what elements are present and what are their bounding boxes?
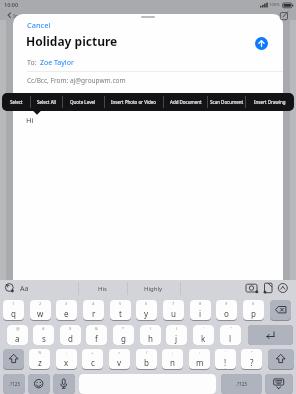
- button[interactable]: [53, 374, 75, 394]
- button[interactable]: 1: [3, 300, 24, 320]
- button[interactable]: [270, 300, 291, 320]
- button[interactable]: ": [241, 349, 262, 369]
- staticText: :: [199, 350, 201, 355]
- button[interactable]: *: [113, 325, 134, 345]
- button[interactable]: Select All: [30, 93, 62, 111]
- button[interactable]: 3: [56, 300, 77, 320]
- staticText: ): [176, 326, 178, 331]
- staticText: i: [199, 308, 202, 319]
- staticText: #: [42, 326, 45, 331]
- staticText: c: [91, 357, 95, 368]
- button[interactable]: His: [78, 280, 127, 297]
- staticText: m: [196, 357, 204, 368]
- button[interactable]: 7: [163, 300, 184, 320]
- staticText: His: [98, 285, 107, 293]
- button[interactable]: 5: [110, 300, 131, 320]
- button[interactable]: 6: [136, 300, 157, 320]
- staticText: 3: [65, 301, 68, 306]
- button[interactable]: Insert Photo or Video: [104, 93, 163, 111]
- staticText: y: [144, 308, 149, 319]
- staticText: k: [201, 333, 206, 344]
- button[interactable]: +: [82, 349, 103, 369]
- button[interactable]: Quote Level: [62, 93, 104, 111]
- staticText: *: [122, 326, 125, 331]
- button[interactable]: 4: [83, 300, 104, 320]
- staticText: q: [11, 308, 16, 319]
- staticText: %: [38, 350, 42, 355]
- button[interactable]: [14, 55, 283, 69]
- button[interactable]: 9: [216, 300, 237, 320]
- staticText: &: [95, 326, 98, 331]
- button[interactable]: /: [136, 349, 157, 369]
- staticText: ;: [172, 350, 174, 355]
- staticText: Scan Document: [210, 99, 244, 105]
- staticText: z: [38, 357, 42, 368]
- staticText: v: [117, 357, 122, 368]
- staticText: .: [251, 364, 253, 369]
- button[interactable]: Insert Drawing: [245, 93, 294, 111]
- staticText: Highly: [144, 285, 163, 293]
- staticText: u: [171, 308, 176, 319]
- staticText: 0: [252, 301, 255, 306]
- button[interactable]: [28, 374, 50, 394]
- button[interactable]: $: [60, 325, 81, 345]
- button[interactable]: (: [140, 325, 161, 345]
- staticText: Insert Photo or Video: [111, 99, 157, 105]
- button[interactable]: :: [189, 349, 210, 369]
- staticText: 10:00: [4, 1, 19, 8]
- staticText: 1: [12, 301, 15, 306]
- button[interactable]: [265, 374, 293, 394]
- staticText: ?: [250, 357, 254, 368]
- button[interactable]: ': [215, 349, 236, 369]
- button[interactable]: ): [166, 325, 187, 345]
- button[interactable]: 2: [30, 300, 51, 320]
- staticText: To:: [27, 58, 37, 68]
- button[interactable]: ;: [162, 349, 183, 369]
- button[interactable]: =: [109, 349, 130, 369]
- staticText: +: [91, 350, 94, 355]
- button[interactable]: .?123: [221, 374, 262, 394]
- button[interactable]: ": [220, 325, 241, 345]
- staticText: n: [170, 357, 175, 368]
- button[interactable]: [79, 374, 216, 394]
- staticText: Zoe Taylor: [40, 58, 74, 68]
- staticText: -: [66, 350, 68, 355]
- button[interactable]: Highly: [127, 280, 180, 297]
- staticText: ": [230, 326, 232, 331]
- button[interactable]: [248, 325, 293, 345]
- staticText: h: [148, 333, 153, 344]
- staticText: Select All: [37, 99, 56, 105]
- button[interactable]: 8: [190, 300, 211, 320]
- button[interactable]: #: [33, 325, 54, 345]
- staticText: 8: [199, 301, 202, 306]
- button[interactable]: -: [56, 349, 77, 369]
- staticText: ": [251, 350, 253, 355]
- button[interactable]: Add Document: [164, 93, 208, 111]
- button[interactable]: [3, 349, 24, 369]
- staticText: @: [16, 326, 20, 331]
- staticText: e: [64, 308, 69, 319]
- staticText: /: [146, 350, 148, 355]
- staticText: t: [119, 308, 122, 319]
- button[interactable]: @: [7, 325, 28, 345]
- button[interactable]: Select: [2, 93, 30, 111]
- staticText: p: [251, 308, 256, 319]
- button[interactable]: [255, 37, 268, 50]
- button[interactable]: %: [29, 349, 50, 369]
- staticText: (: [150, 326, 152, 331]
- button[interactable]: ': [193, 325, 214, 345]
- staticText: Add Document: [170, 99, 202, 105]
- button[interactable]: Cancel: [24, 19, 48, 29]
- button[interactable]: [268, 349, 294, 369]
- staticText: s: [42, 333, 46, 344]
- staticText: l: [229, 333, 232, 344]
- staticText: 9: [225, 301, 228, 306]
- staticText: g: [121, 333, 126, 344]
- staticText: .?123: [9, 381, 20, 387]
- button[interactable]: Scan Document: [208, 93, 245, 111]
- button[interactable]: &: [86, 325, 107, 345]
- staticText: Aa: [20, 284, 29, 294]
- button[interactable]: .?123: [3, 374, 25, 394]
- staticText: ': [225, 350, 226, 355]
- button[interactable]: 0: [243, 300, 264, 320]
